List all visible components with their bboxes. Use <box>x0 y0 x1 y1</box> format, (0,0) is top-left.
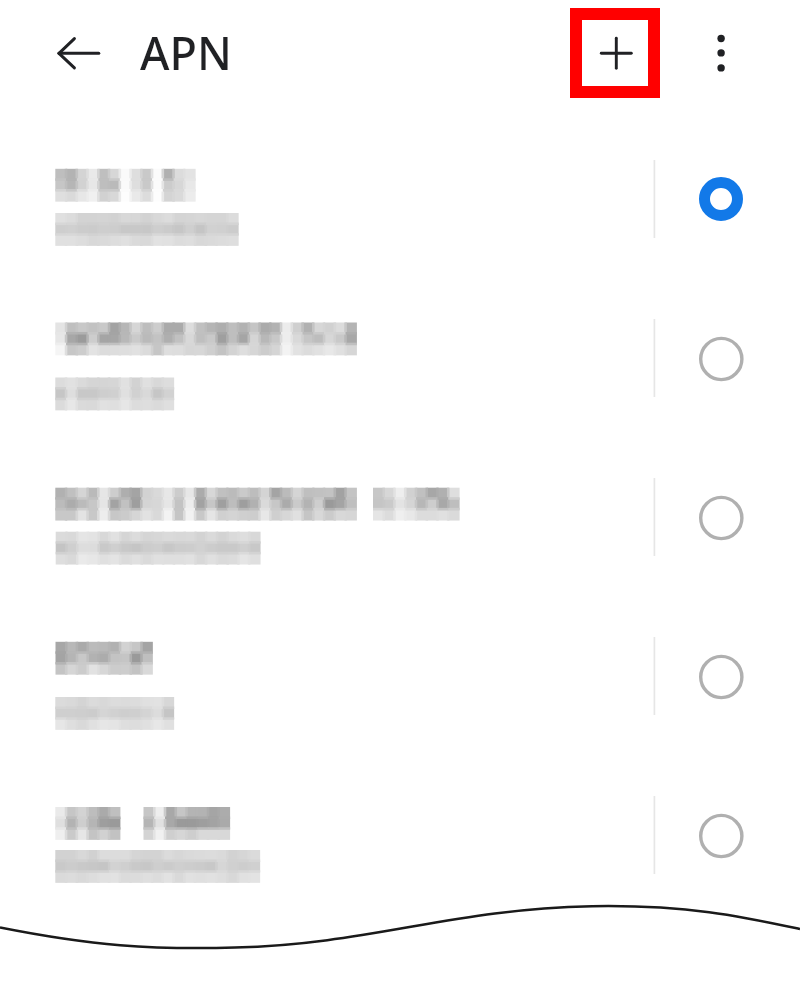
staticText: APN <box>140 22 232 83</box>
button[interactable]: Navigate up <box>35 29 83 77</box>
button[interactable]: APN entry <box>0 756 800 914</box>
button[interactable]: Add new APN <box>582 20 648 86</box>
button[interactable]: APN entry <box>0 597 800 755</box>
button[interactable]: APN entry <box>0 279 800 437</box>
button[interactable]: APN entry <box>0 120 800 278</box>
button[interactable]: APN entry <box>0 438 800 596</box>
button[interactable]: More options <box>697 29 745 77</box>
